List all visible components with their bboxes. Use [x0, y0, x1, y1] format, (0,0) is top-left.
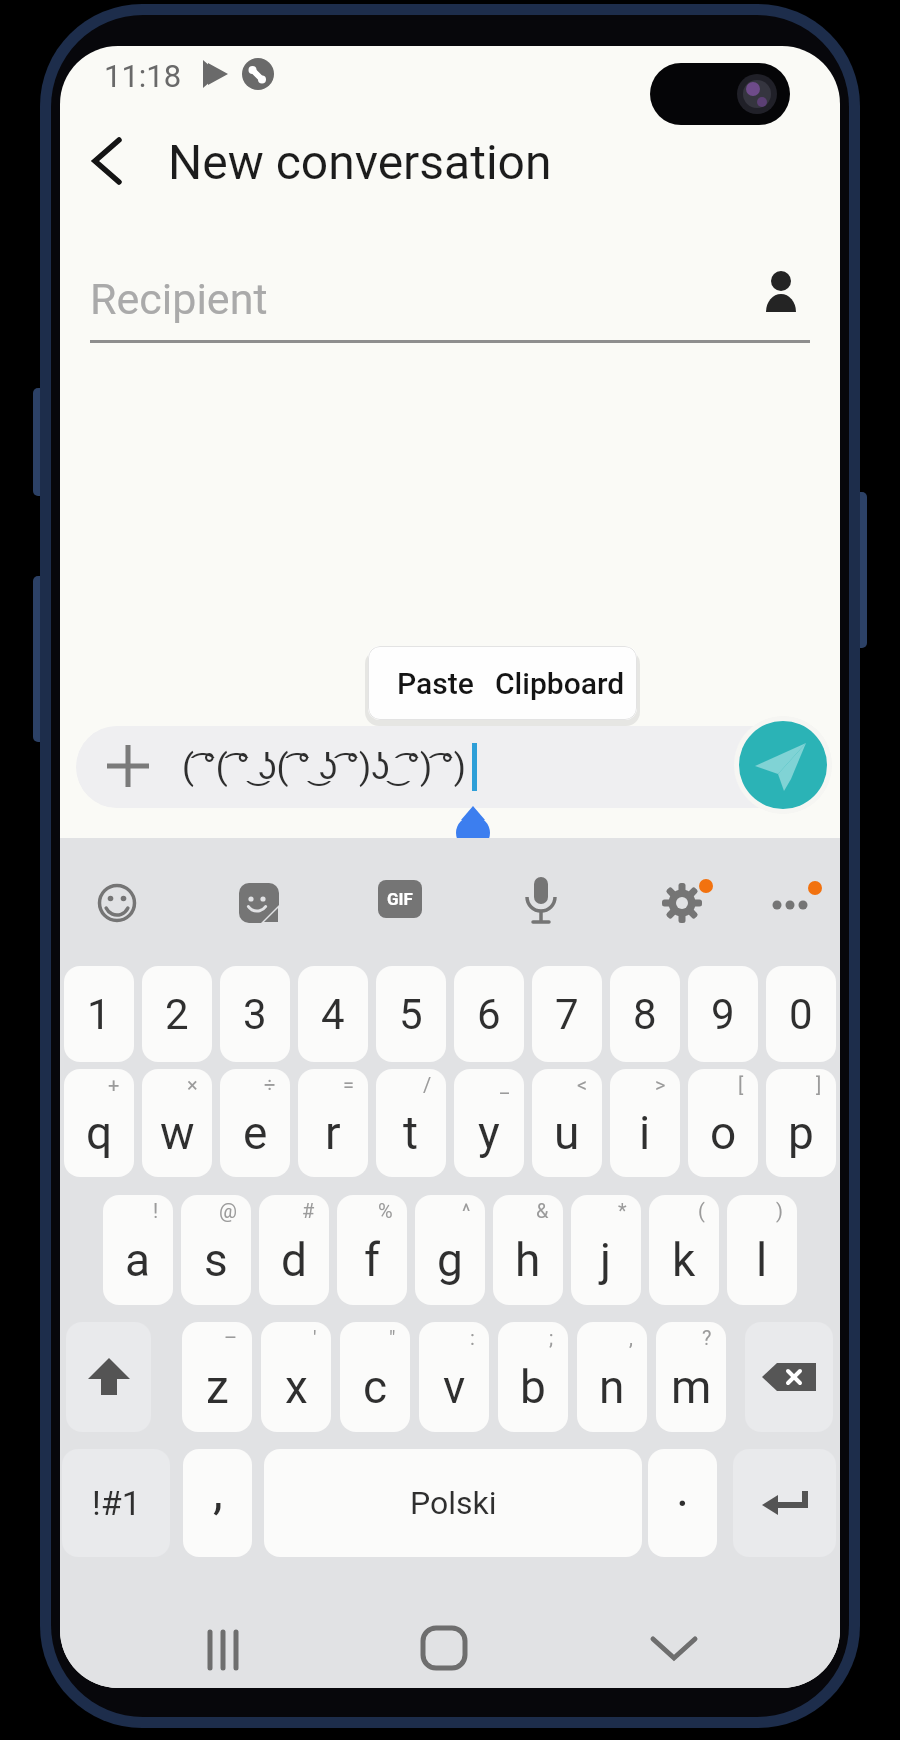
- button[interactable]: o: [688, 1069, 758, 1177]
- staticText: ;: [549, 1326, 554, 1349]
- staticText: b: [520, 1360, 546, 1414]
- button[interactable]: 7: [532, 966, 602, 1062]
- staticText: ': [313, 1326, 317, 1349]
- button[interactable]: [745, 1322, 833, 1432]
- button[interactable]: Polski: [264, 1449, 642, 1557]
- button[interactable]: v: [419, 1322, 489, 1432]
- staticText: x: [285, 1360, 308, 1414]
- button[interactable]: [420, 1624, 468, 1672]
- staticText: ×: [187, 1073, 198, 1096]
- button[interactable]: Paste: [378, 646, 493, 720]
- staticText: r: [325, 1106, 341, 1160]
- staticText: s: [204, 1233, 228, 1287]
- button[interactable]: [648, 1624, 700, 1672]
- button[interactable]: [739, 721, 827, 809]
- button[interactable]: c: [340, 1322, 410, 1432]
- staticText: Recipient: [90, 274, 268, 324]
- staticText: n: [599, 1360, 625, 1414]
- staticText: 1: [87, 990, 111, 1039]
- button[interactable]: k: [649, 1195, 719, 1305]
- button[interactable]: [523, 877, 559, 927]
- staticText: k: [672, 1233, 696, 1287]
- button[interactable]: z: [182, 1322, 252, 1432]
- button[interactable]: ,: [183, 1449, 252, 1557]
- staticText: New conversation: [168, 134, 552, 190]
- button[interactable]: b: [498, 1322, 568, 1432]
- button[interactable]: q: [64, 1069, 134, 1177]
- button[interactable]: t: [376, 1069, 446, 1177]
- staticText: 0: [789, 990, 813, 1039]
- staticText: [: [738, 1073, 744, 1096]
- staticText: ÷: [264, 1073, 276, 1096]
- button[interactable]: GIF: [378, 880, 422, 918]
- button[interactable]: 8: [610, 966, 680, 1062]
- button[interactable]: r: [298, 1069, 368, 1177]
- staticText: u: [554, 1106, 580, 1160]
- staticText: !#1: [92, 1483, 141, 1523]
- staticText: Paste: [397, 666, 474, 701]
- button[interactable]: l: [727, 1195, 797, 1305]
- button[interactable]: e: [220, 1069, 290, 1177]
- button[interactable]: 2: [142, 966, 212, 1062]
- button[interactable]: p: [766, 1069, 836, 1177]
- button[interactable]: 5: [376, 966, 446, 1062]
- staticText: e: [243, 1106, 268, 1160]
- button[interactable]: [97, 883, 137, 923]
- staticText: j: [600, 1233, 612, 1287]
- staticText: &: [536, 1199, 549, 1222]
- button[interactable]: s: [181, 1195, 251, 1305]
- button[interactable]: w: [142, 1069, 212, 1177]
- staticText: 3: [243, 990, 267, 1039]
- button[interactable]: [66, 1322, 151, 1432]
- button[interactable]: 3: [220, 966, 290, 1062]
- button[interactable]: Clipboard: [486, 646, 634, 720]
- staticText: Polski: [410, 1484, 497, 1522]
- button[interactable]: i: [610, 1069, 680, 1177]
- staticText: 9: [711, 990, 735, 1039]
- staticText: ?: [702, 1326, 712, 1349]
- staticText: 4: [321, 990, 345, 1039]
- button[interactable]: 9: [688, 966, 758, 1062]
- button[interactable]: u: [532, 1069, 602, 1177]
- staticText: ": [389, 1326, 396, 1349]
- button[interactable]: 0: [766, 966, 836, 1062]
- button[interactable]: a: [103, 1195, 173, 1305]
- staticText: #: [302, 1199, 315, 1222]
- button[interactable]: j: [571, 1195, 641, 1305]
- staticText: GIF: [387, 889, 413, 909]
- button[interactable]: 1: [64, 966, 134, 1062]
- staticText: ,: [213, 1462, 223, 1521]
- button[interactable]: Recipient: [90, 256, 810, 342]
- button[interactable]: x: [261, 1322, 331, 1432]
- button[interactable]: y: [454, 1069, 524, 1177]
- staticText: f: [364, 1233, 380, 1287]
- button[interactable]: .: [648, 1449, 717, 1557]
- button[interactable]: 4: [298, 966, 368, 1062]
- button[interactable]: [84, 134, 136, 186]
- button[interactable]: [733, 1449, 836, 1557]
- staticText: h: [515, 1233, 541, 1287]
- button[interactable]: m: [656, 1322, 726, 1432]
- staticText: 11:18: [104, 58, 182, 94]
- button[interactable]: d: [259, 1195, 329, 1305]
- staticText: g: [437, 1233, 463, 1287]
- staticText: 7: [555, 990, 579, 1039]
- button[interactable]: f: [337, 1195, 407, 1305]
- button[interactable]: 6: [454, 966, 524, 1062]
- staticText: %: [378, 1199, 393, 1222]
- staticText: ): [776, 1199, 783, 1222]
- staticText: 6: [477, 990, 501, 1039]
- staticText: v: [443, 1360, 466, 1414]
- button[interactable]: [200, 1626, 250, 1676]
- button[interactable]: [660, 879, 714, 925]
- staticText: _: [500, 1073, 510, 1096]
- button[interactable]: [239, 883, 279, 923]
- button[interactable]: [760, 881, 824, 925]
- button[interactable]: h: [493, 1195, 563, 1305]
- staticText: a: [125, 1233, 151, 1287]
- staticText: w: [160, 1106, 195, 1160]
- button[interactable]: [76, 726, 830, 808]
- button[interactable]: !#1: [62, 1449, 170, 1557]
- button[interactable]: n: [577, 1322, 647, 1432]
- button[interactable]: g: [415, 1195, 485, 1305]
